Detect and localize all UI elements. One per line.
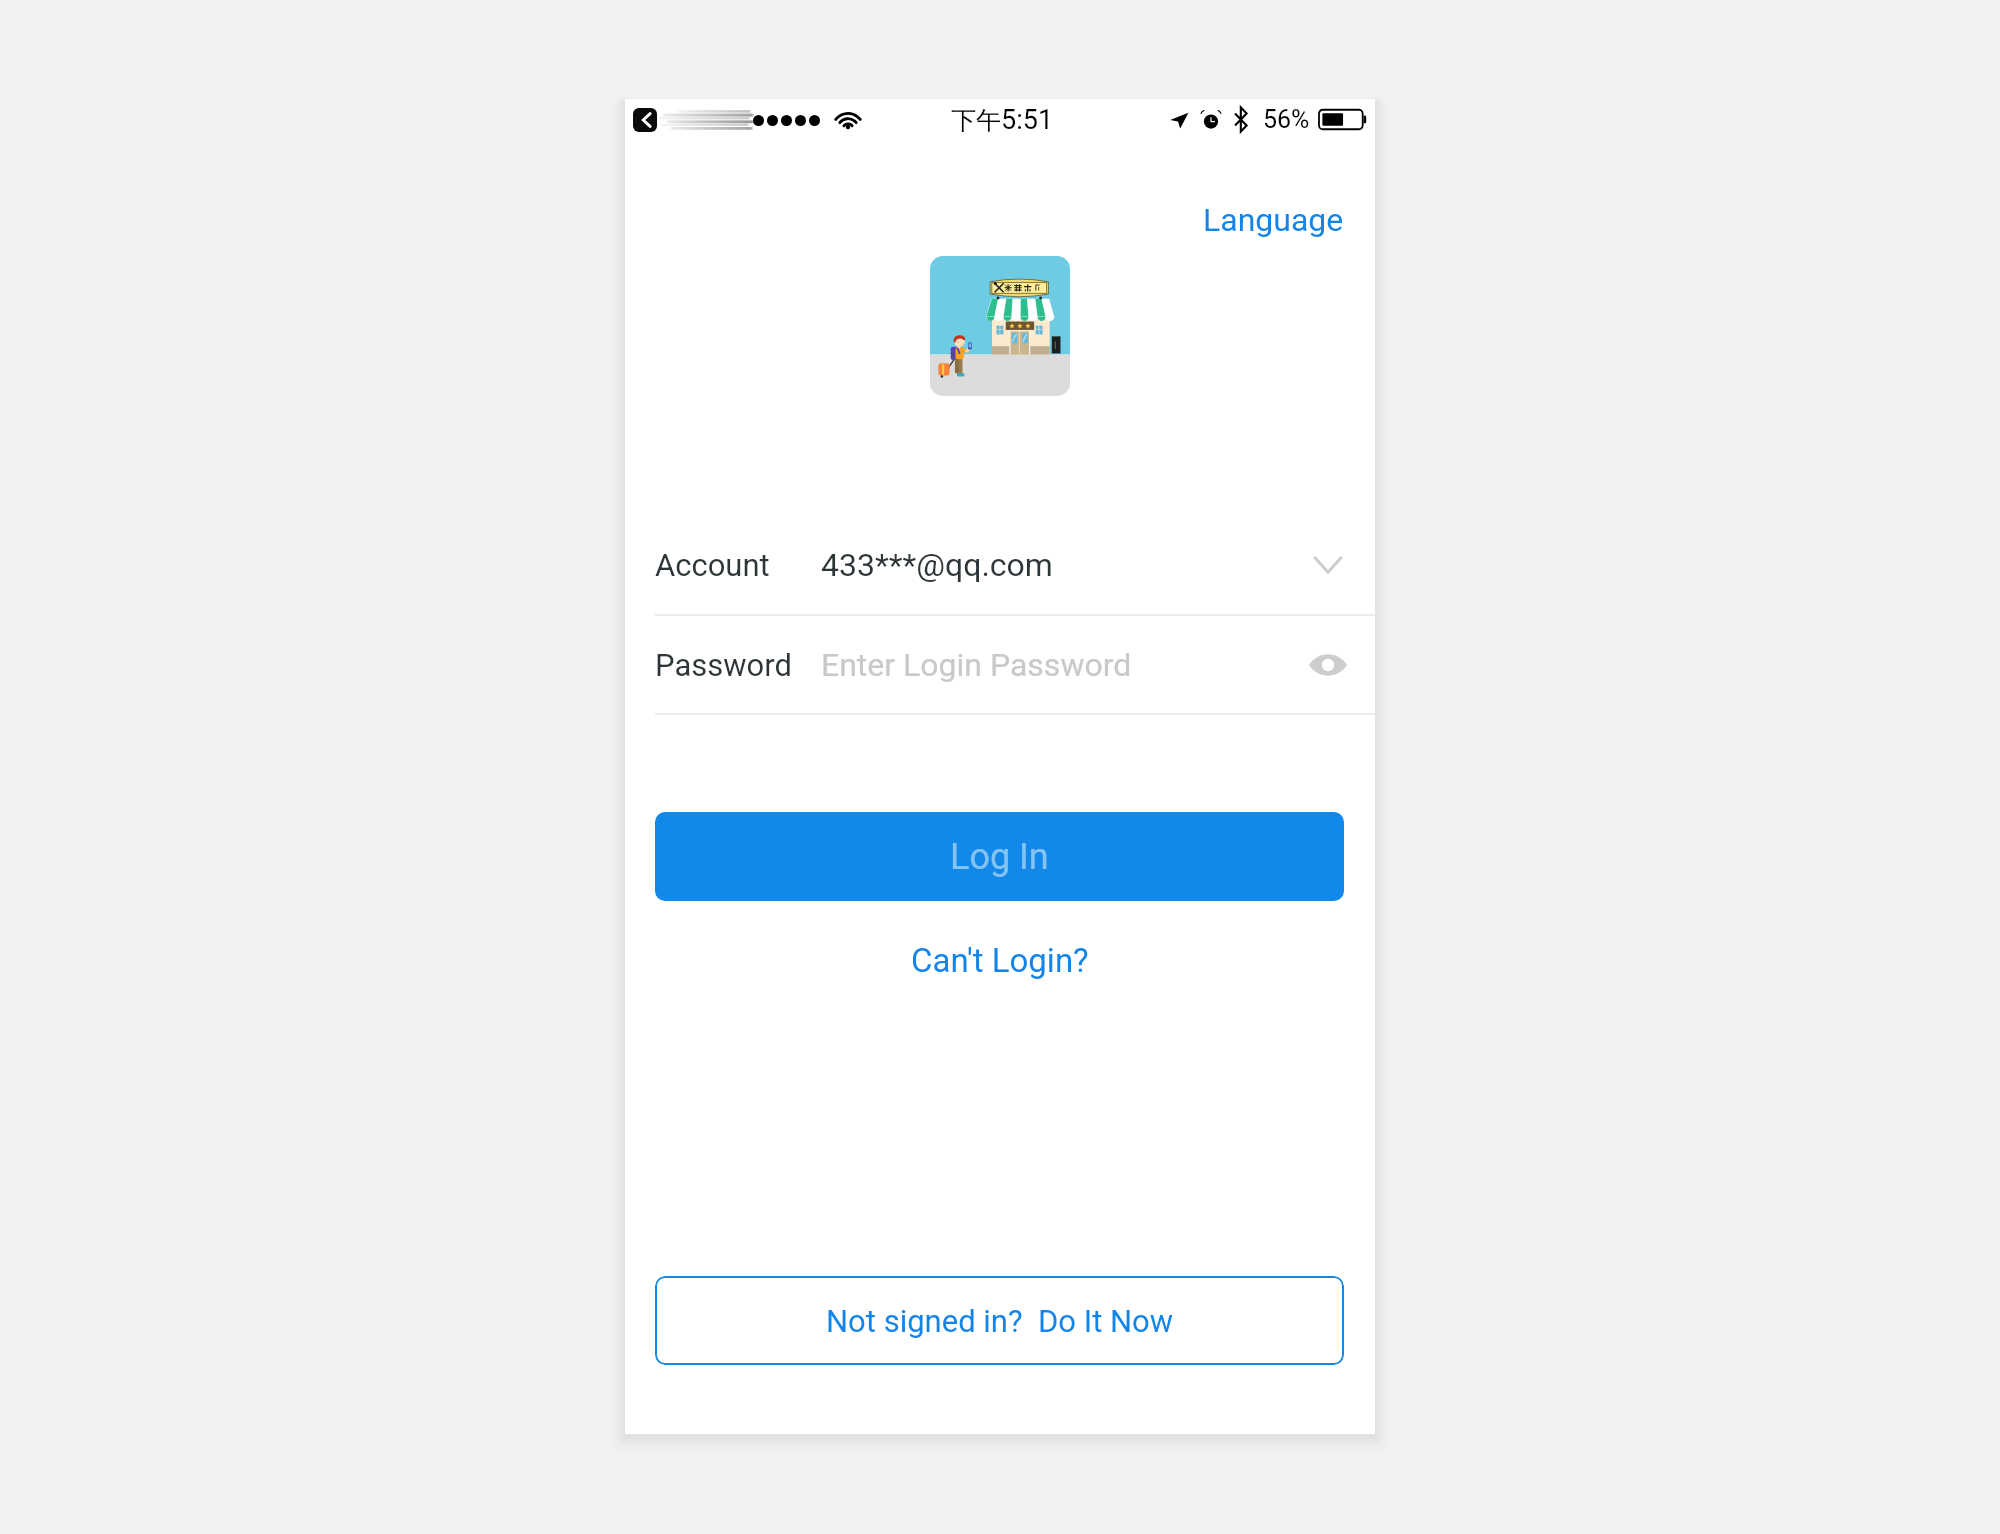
staticText: 5:51	[1001, 104, 1054, 136]
button[interactable]: Choose a saved account	[1306, 543, 1350, 587]
button[interactable]: Back	[633, 108, 657, 132]
staticText: Log In	[950, 836, 1049, 878]
staticText: 56%	[1263, 105, 1310, 134]
staticText: Language	[1203, 201, 1344, 239]
button[interactable]: Account	[625, 515, 1375, 614]
staticText: Password	[655, 647, 792, 683]
staticText: 下午	[951, 105, 1001, 136]
button[interactable]: Not signed in? Do It Now	[655, 1276, 1344, 1365]
staticText: Can't Login?	[911, 941, 1089, 980]
button[interactable]: Language	[1190, 191, 1357, 249]
button[interactable]: Can't Login?	[901, 934, 1099, 987]
staticText: Account	[655, 547, 770, 583]
button[interactable]: Password	[625, 616, 1375, 713]
staticText: 433***@qq.com	[821, 546, 1053, 584]
button[interactable]: Show password	[1306, 643, 1350, 687]
button[interactable]: Log In	[655, 812, 1344, 901]
staticText: Enter Login Password	[821, 646, 1132, 684]
staticText: Not signed in? Do It Now	[826, 1303, 1174, 1339]
